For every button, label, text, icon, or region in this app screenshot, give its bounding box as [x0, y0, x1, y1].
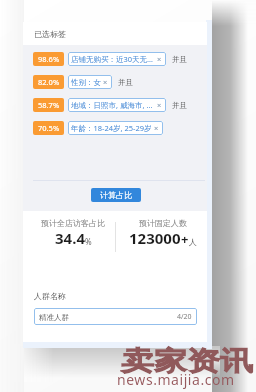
- staticText: 年龄：18-24岁, 25-29岁: [71, 123, 154, 133]
- staticText: 并且: [172, 55, 187, 64]
- button[interactable]: 计算占比: [91, 188, 141, 202]
- staticText: 58.7%: [38, 100, 60, 110]
- staticText: ×: [157, 54, 162, 64]
- staticText: 并且: [172, 101, 187, 110]
- staticText: 并且: [118, 78, 133, 87]
- staticText: 地域：日照市, 威海市, …: [71, 100, 157, 110]
- staticText: ×: [154, 123, 159, 133]
- staticText: news.maijia.com: [117, 370, 235, 389]
- staticText: 精准人群: [39, 313, 177, 322]
- staticText: 店铺无购买：近30天无…: [71, 54, 157, 64]
- button[interactable]: 98.6%: [33, 52, 64, 66]
- staticText: 34.4: [55, 228, 85, 248]
- staticText: 4/20: [177, 312, 192, 322]
- staticText: ×: [157, 100, 162, 110]
- staticText: +: [181, 230, 189, 248]
- button[interactable]: 58.7%: [33, 98, 64, 112]
- button[interactable]: 店铺无购买：近30天无…: [68, 52, 166, 66]
- staticText: 预计全店访客占比: [41, 218, 105, 228]
- staticText: 计算占比: [100, 190, 132, 200]
- button[interactable]: 70.5%: [33, 121, 64, 135]
- button[interactable]: 年龄：18-24岁, 25-29岁: [68, 121, 163, 135]
- staticText: %: [85, 236, 92, 247]
- staticText: 123000: [129, 228, 181, 248]
- staticText: 性别：女: [71, 78, 103, 87]
- staticText: 人群名称: [34, 291, 66, 301]
- staticText: 98.6%: [38, 54, 60, 64]
- staticText: 预计固定人数: [139, 218, 187, 228]
- button[interactable]: 82.0%: [33, 75, 64, 89]
- button[interactable]: 精准人群: [34, 308, 197, 325]
- button[interactable]: 地域：日照市, 威海市, …: [68, 98, 166, 112]
- staticText: 82.0%: [38, 77, 60, 87]
- staticText: ×: [103, 77, 108, 87]
- button[interactable]: 性别：女: [68, 75, 112, 89]
- staticText: 已选标签: [34, 29, 66, 39]
- staticText: 卖家资讯: [121, 344, 253, 378]
- staticText: 70.5%: [38, 123, 60, 133]
- staticText: 人: [189, 237, 197, 247]
